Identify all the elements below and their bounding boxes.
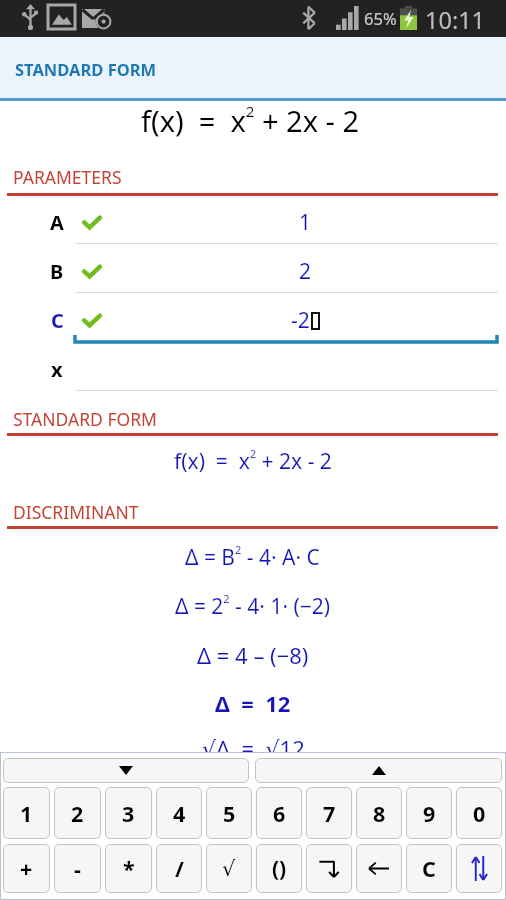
button[interactable]: Previous field	[3, 758, 249, 783]
staticText: 1	[20, 799, 33, 828]
staticText: A	[50, 209, 64, 236]
staticText: /	[175, 854, 184, 883]
button[interactable]: 1	[3, 787, 50, 839]
button[interactable]: STANDARD FORM	[0, 37, 506, 98]
staticText: B	[50, 258, 64, 285]
staticText: 0	[473, 799, 486, 828]
button[interactable]: 2	[54, 787, 101, 839]
button[interactable]: Next field	[255, 758, 502, 783]
staticText: C	[51, 307, 64, 334]
staticText: 7	[323, 799, 336, 828]
button[interactable]: √	[206, 844, 252, 893]
staticText: 3	[122, 799, 135, 828]
button[interactable]: Switch keyboard	[456, 844, 502, 893]
staticText: DISCRIMINANT	[13, 500, 139, 524]
staticText: 1	[299, 208, 312, 237]
button[interactable]: 3	[105, 787, 152, 839]
staticText: 8	[373, 799, 386, 828]
button[interactable]: A	[0, 198, 506, 247]
button[interactable]: C	[0, 296, 506, 345]
staticText: f(x) = x2 + 2x - 2	[174, 446, 332, 475]
button[interactable]: -	[54, 844, 101, 893]
button[interactable]: 0	[456, 787, 502, 839]
staticText: x	[51, 356, 63, 383]
button[interactable]: 6	[256, 787, 302, 839]
button[interactable]: 9	[406, 787, 452, 839]
staticText: PARAMETERS	[13, 165, 122, 189]
staticText: Δ = B2 - 4· A· C	[185, 542, 320, 571]
button[interactable]: 5	[206, 787, 252, 839]
staticText: √	[222, 857, 236, 881]
button[interactable]: 8	[356, 787, 402, 839]
staticText: Δ = 22 - 4· 1· (−2)	[175, 591, 331, 620]
staticText: +	[20, 854, 33, 883]
staticText: 10:11	[425, 4, 486, 36]
staticText: 6	[273, 799, 286, 828]
staticText: 9	[423, 799, 436, 828]
button[interactable]: x	[0, 345, 506, 394]
button[interactable]: B	[0, 247, 506, 296]
button[interactable]: Enter	[306, 844, 352, 893]
button[interactable]: 4	[156, 787, 202, 839]
button[interactable]: 7	[306, 787, 352, 839]
staticText: Δ = 4 – (−8)	[197, 640, 309, 670]
button[interactable]: /	[156, 844, 202, 893]
button[interactable]: *	[105, 844, 152, 893]
staticText: 2	[299, 257, 312, 286]
staticText: ()	[272, 854, 287, 883]
staticText: 2	[71, 799, 84, 828]
staticText: 5	[223, 799, 236, 828]
button[interactable]: Backspace	[356, 844, 402, 893]
staticText: -	[74, 854, 81, 883]
staticText: √Δ = √12	[202, 733, 305, 763]
button[interactable]: C	[406, 844, 452, 893]
staticText: 4	[173, 799, 186, 828]
staticText: Δ = 12	[215, 688, 291, 718]
button[interactable]: +	[3, 844, 50, 893]
staticText: -2	[291, 306, 310, 335]
staticText: STANDARD FORM	[15, 58, 157, 80]
button[interactable]: ()	[256, 844, 302, 893]
staticText: C	[422, 854, 436, 883]
staticText: 65%	[364, 7, 397, 29]
staticText: *	[123, 854, 135, 883]
staticText: f(x) = x2 + 2x - 2	[141, 101, 360, 141]
staticText: STANDARD FORM	[13, 407, 157, 431]
